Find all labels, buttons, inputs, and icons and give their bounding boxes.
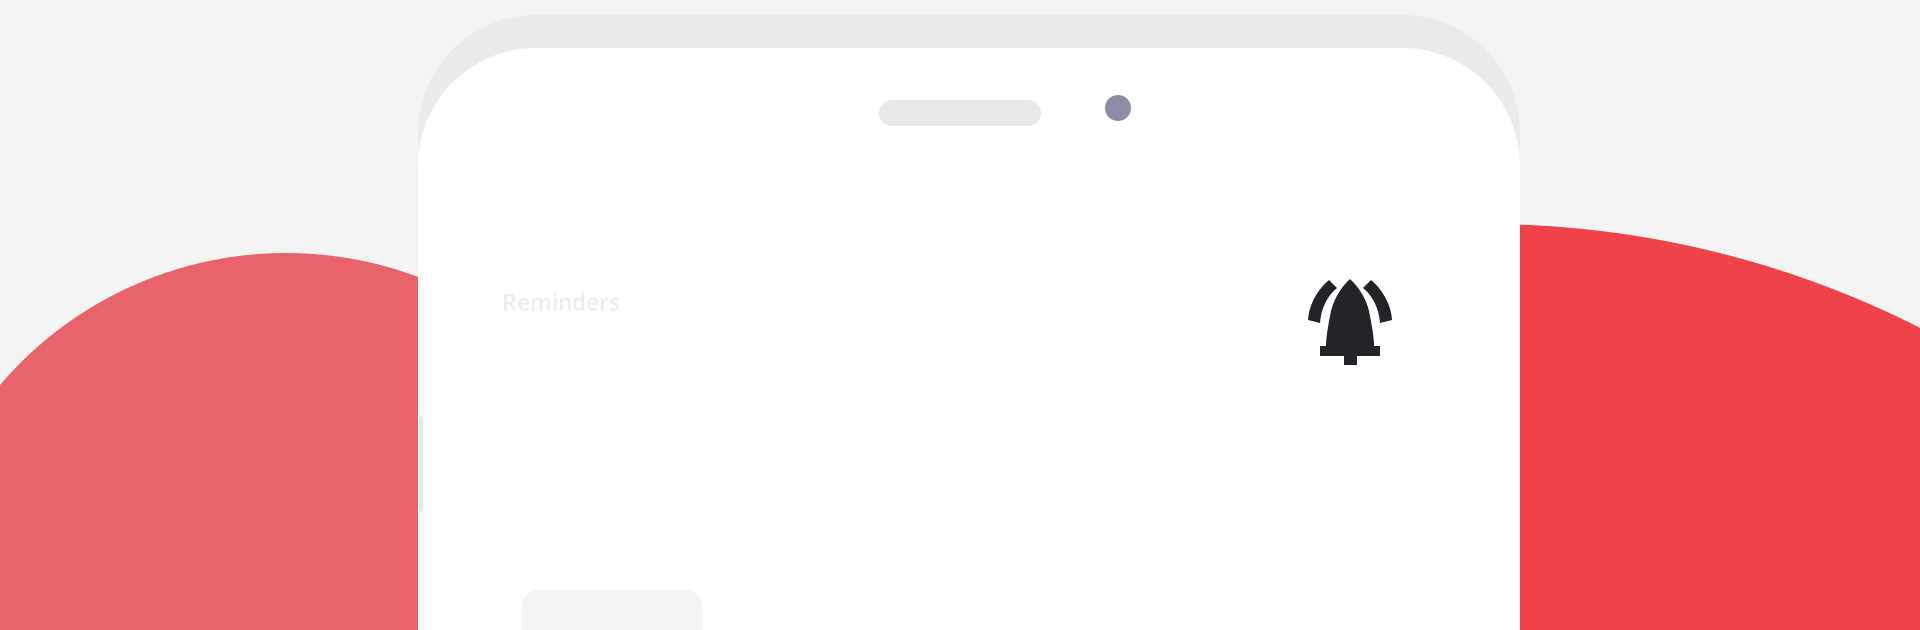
button[interactable]: Notifications [1300,270,1400,370]
staticText: Reminders [502,287,620,317]
